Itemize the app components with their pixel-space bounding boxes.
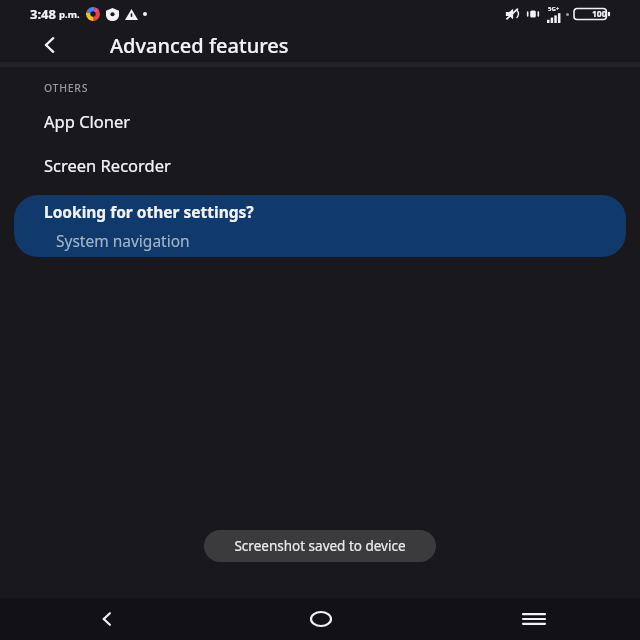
staticText: Screenshot saved to device (234, 537, 406, 555)
staticText: 3:48 (30, 5, 56, 23)
button[interactable]: Home (214, 598, 427, 640)
staticText: Advanced features (110, 32, 289, 59)
button[interactable]: App Cloner (0, 99, 640, 143)
button[interactable]: Screenshot saved to device (204, 530, 436, 562)
staticText: System navigation (56, 230, 190, 251)
staticText: p.m. (59, 8, 80, 21)
button[interactable]: Back (30, 28, 70, 62)
button[interactable]: Looking for other settings? (14, 195, 626, 257)
staticText: 100 (592, 8, 607, 20)
button[interactable]: Back (0, 598, 214, 640)
staticText: Screen Recorder (44, 154, 171, 176)
button[interactable]: Recents (427, 598, 640, 640)
button[interactable]: Screen Recorder (0, 143, 640, 187)
staticText: 5G+ (548, 5, 560, 13)
staticText: Looking for other settings? (44, 201, 254, 222)
staticText: App Cloner (44, 110, 131, 132)
staticText: OTHERS (44, 81, 89, 95)
